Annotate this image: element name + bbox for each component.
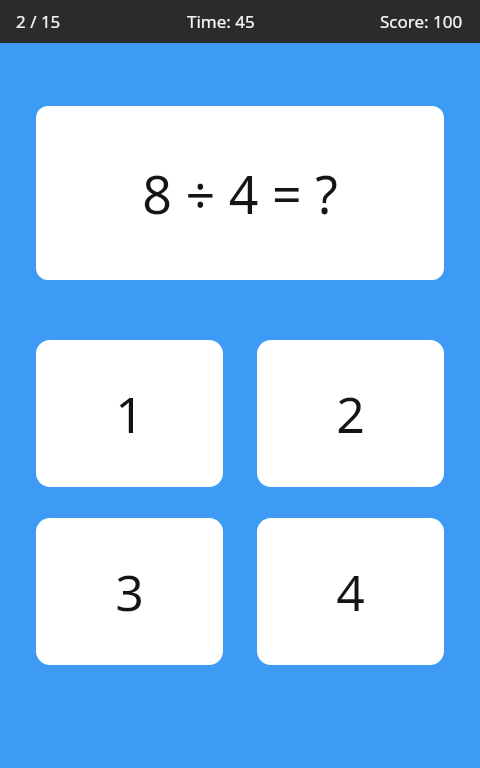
button[interactable]: 2 <box>257 340 444 487</box>
staticText: 3 <box>115 558 144 626</box>
button[interactable]: Question <box>36 106 444 280</box>
button[interactable]: 3 <box>36 518 223 665</box>
staticText: 1 <box>115 380 144 448</box>
staticText: 8 ÷ 4 = ? <box>142 158 338 229</box>
staticText: 2 <box>336 380 365 448</box>
staticText: Score: 100 <box>380 10 463 33</box>
button[interactable]: 1 <box>36 340 223 487</box>
button[interactable]: 4 <box>257 518 444 665</box>
staticText: 2 / 15 <box>16 10 61 33</box>
staticText: Time: 45 <box>187 10 255 33</box>
staticText: 4 <box>336 558 365 626</box>
